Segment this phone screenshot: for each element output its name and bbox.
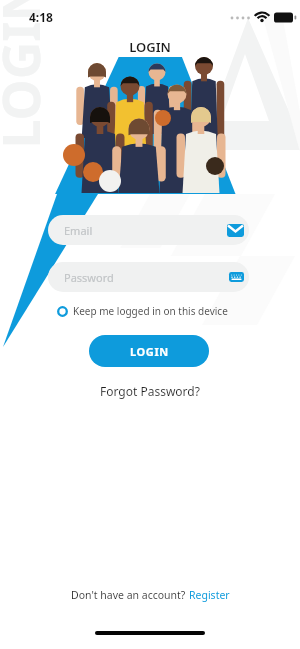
other: Email [227, 224, 244, 237]
button[interactable]: Register [189, 588, 230, 602]
staticText: Password [64, 270, 114, 285]
other: Show keyboard [229, 272, 244, 282]
staticText: LOGIN [130, 344, 169, 359]
button[interactable]: LOGIN [89, 335, 209, 367]
staticText: LOGIN [0, 0, 54, 148]
staticText: Register [189, 588, 230, 602]
staticText: Email [64, 223, 93, 238]
button[interactable]: Keep me logged in on this device [57, 304, 228, 318]
staticText: 4:18 [29, 9, 53, 25]
staticText: Don't have an account? [71, 588, 189, 602]
staticText: LOGIN [0, 38, 300, 56]
button[interactable]: Forgot Password? [98, 381, 202, 401]
button[interactable]: Password [48, 262, 249, 292]
staticText: Keep me logged in on this device [73, 304, 228, 318]
button[interactable]: Email [48, 215, 249, 245]
staticText: Forgot Password? [100, 383, 200, 399]
